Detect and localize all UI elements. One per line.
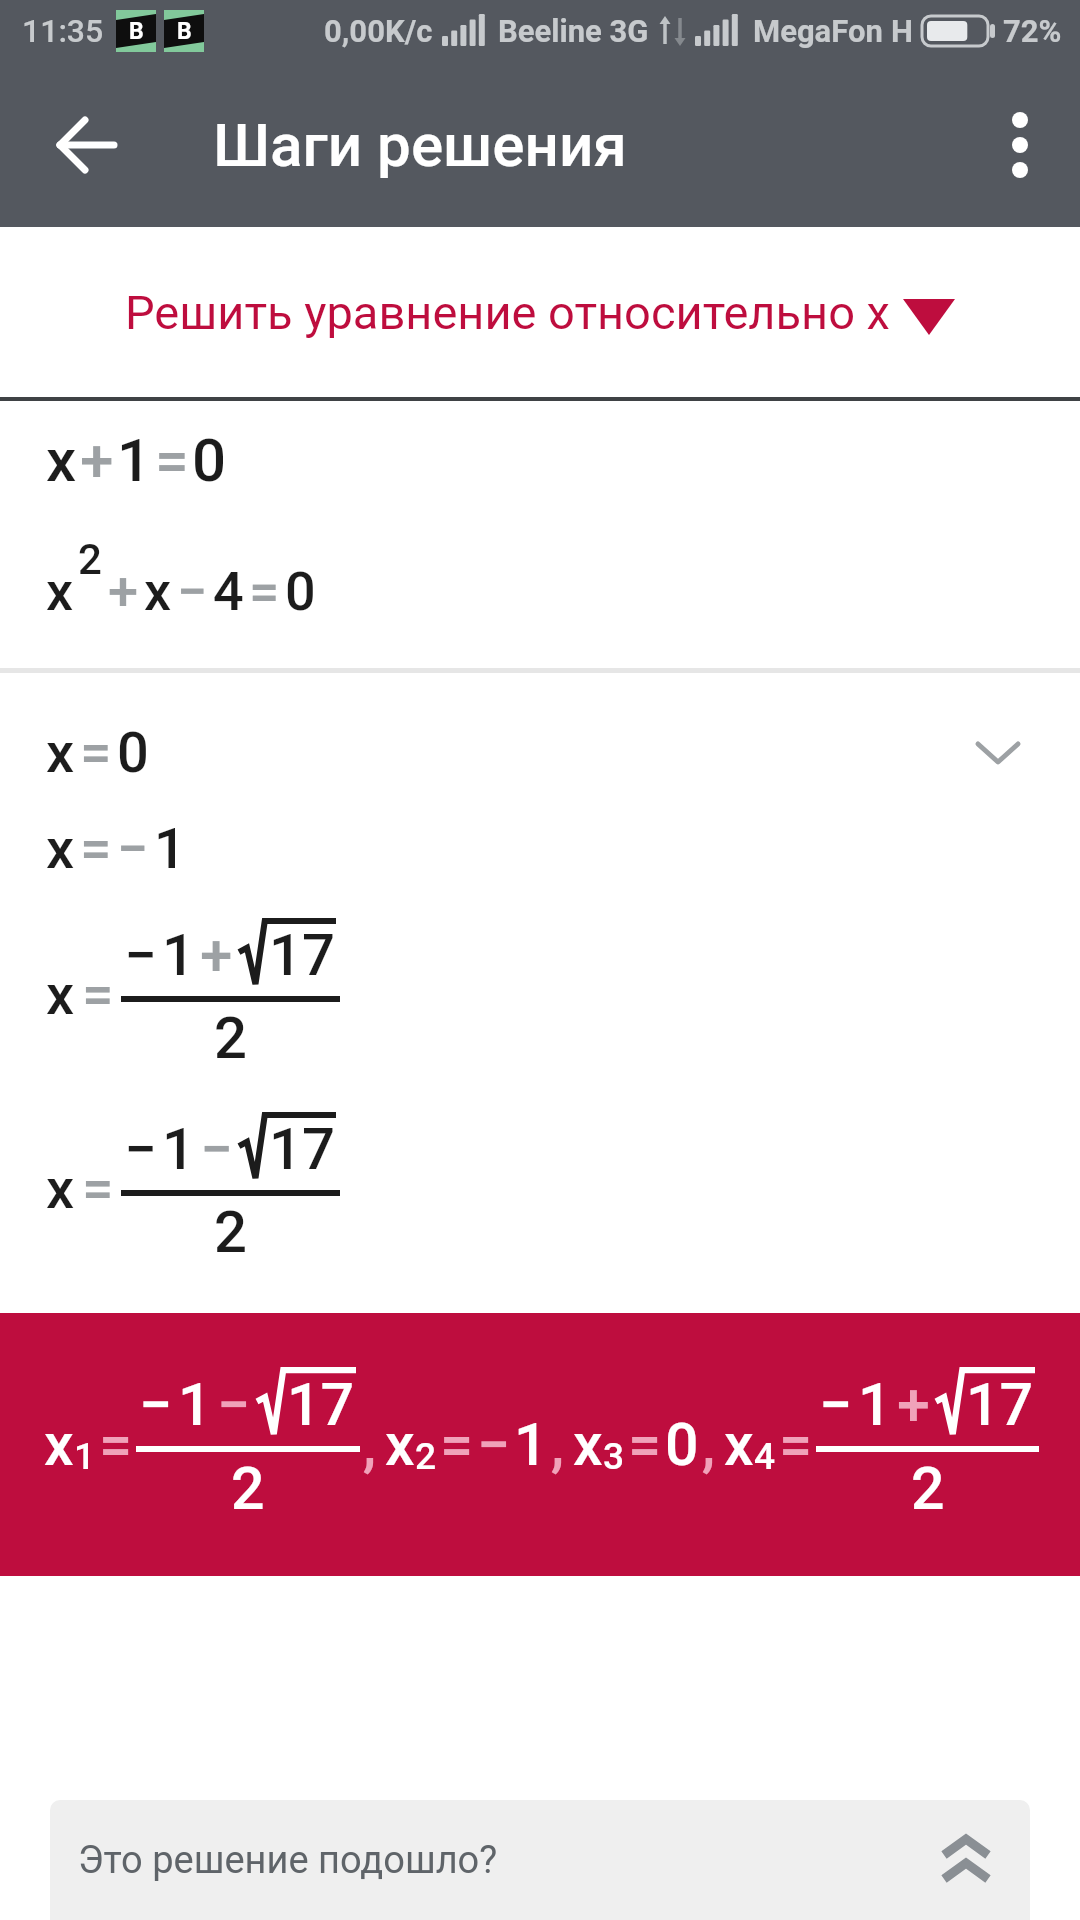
staticText: 3 — [603, 1435, 625, 1479]
staticText: x — [46, 816, 75, 882]
staticText: x — [573, 1410, 603, 1479]
staticText: 17 — [269, 921, 335, 989]
staticText: = — [779, 1410, 813, 1479]
staticText: x — [144, 560, 172, 623]
staticText: 0 — [117, 720, 149, 786]
staticText: 1 — [162, 921, 195, 989]
staticText: H — [891, 13, 913, 49]
staticText: = — [80, 816, 112, 882]
staticText: x — [46, 1156, 75, 1222]
staticText: = — [82, 1156, 114, 1222]
staticText: = — [440, 1410, 474, 1479]
button[interactable] — [42, 100, 132, 190]
staticText: − — [124, 1115, 157, 1183]
staticText: B — [129, 18, 144, 45]
staticText: 0 — [665, 1410, 699, 1479]
staticText: x — [46, 962, 75, 1028]
staticText: − — [217, 1370, 251, 1439]
staticText: 2 — [78, 535, 102, 584]
staticText: + — [200, 921, 233, 989]
staticText: x — [385, 1410, 415, 1479]
staticText: = — [80, 720, 112, 786]
staticText: 2 — [415, 1435, 437, 1479]
staticText: = — [82, 962, 114, 1028]
staticText: 4 — [754, 1435, 776, 1479]
button[interactable]: Это решение подошло? — [50, 1800, 1030, 1920]
staticText: − — [139, 1370, 173, 1439]
staticText: 17 — [287, 1370, 355, 1439]
staticText: − — [819, 1370, 853, 1439]
staticText: 2 — [214, 1198, 247, 1266]
staticText: 17 — [269, 1115, 335, 1183]
staticText: 1 — [514, 1410, 548, 1479]
staticText: x — [46, 425, 77, 495]
staticText: = — [99, 1410, 133, 1479]
staticText: B — [177, 18, 192, 45]
staticText: 1 — [178, 1370, 212, 1439]
staticText: − — [124, 921, 157, 989]
staticText: 2 — [231, 1454, 265, 1523]
staticText: 0 — [192, 425, 227, 495]
staticText: − — [200, 1115, 233, 1183]
staticText: MegaFon — [753, 13, 883, 49]
button[interactable] — [984, 109, 1056, 181]
staticText: Шаги решения — [213, 110, 627, 180]
staticText: , — [702, 1410, 715, 1479]
staticText: 2 — [911, 1454, 945, 1523]
staticText: , — [551, 1410, 564, 1479]
staticText: , — [363, 1410, 376, 1479]
staticText: 0,00K/c — [324, 13, 433, 49]
staticText: x — [724, 1410, 754, 1479]
staticText: Это решение подошло? — [78, 1838, 498, 1883]
staticText: = — [628, 1410, 662, 1479]
staticText: Решить уравнение относительно x — [125, 285, 890, 340]
staticText: 1 — [162, 1115, 195, 1183]
staticText: = — [249, 560, 280, 623]
staticText: 72% — [1003, 13, 1062, 49]
staticText: 11:35 — [22, 12, 104, 50]
staticText: − — [117, 816, 149, 882]
staticText: x — [46, 720, 75, 786]
staticText: x — [46, 560, 74, 623]
staticText: = — [155, 425, 189, 495]
staticText: 4 — [213, 560, 244, 623]
staticText: 1 — [74, 1435, 96, 1479]
staticText: 1 — [117, 425, 152, 495]
staticText: 1 — [858, 1370, 892, 1439]
staticText: + — [80, 425, 114, 495]
staticText: + — [897, 1370, 930, 1439]
staticText: 0 — [285, 560, 316, 623]
button[interactable]: x — [46, 720, 1020, 786]
staticText: 17 — [966, 1370, 1034, 1439]
staticText: − — [177, 560, 208, 623]
staticText: Beeline 3G — [498, 13, 649, 49]
staticText: + — [108, 560, 139, 623]
button[interactable]: Решить уравнение относительно x — [0, 285, 1080, 340]
staticText: x — [44, 1410, 74, 1479]
staticText: 1 — [154, 816, 186, 882]
staticText: 2 — [214, 1004, 247, 1072]
staticText: − — [477, 1410, 511, 1479]
